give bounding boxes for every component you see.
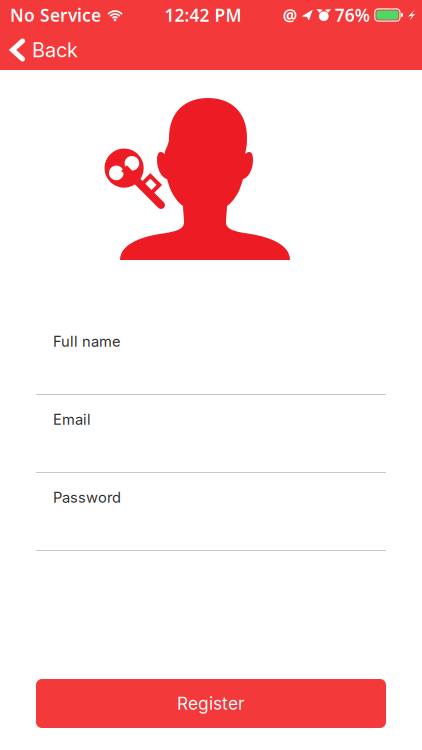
staticText: Password [53,489,121,506]
staticText: Email [53,411,91,428]
staticText: Register [177,693,245,714]
staticText: 12:42 PM [164,3,241,26]
staticText: @ [283,4,297,26]
staticText: Back [32,38,78,62]
button[interactable]: Back [0,30,90,70]
staticText: Full name [53,333,121,350]
button[interactable]: Register [36,679,386,728]
staticText: 76% [335,3,370,26]
staticText: No Service [10,3,101,26]
